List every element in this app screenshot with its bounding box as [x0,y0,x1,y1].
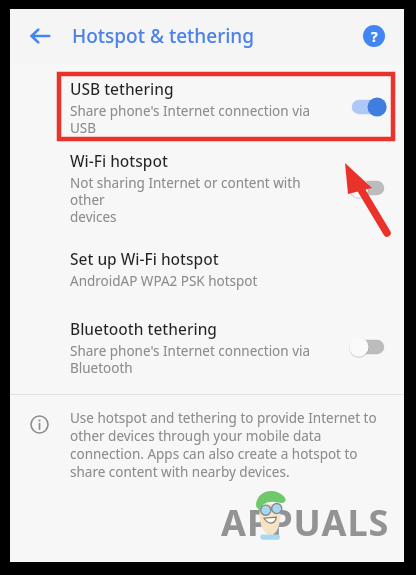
staticText: Share phone's Internet connection via Bl… [70,342,311,377]
staticText: Use hotspot and tethering to provide Int… [70,409,388,481]
staticText: AndroidAP WPA2 PSK hotspot [70,272,258,290]
staticText: Set up Wi-Fi hotspot [70,248,219,269]
button[interactable]: USB tethering [10,69,404,145]
button[interactable]: Help [354,16,394,56]
staticText: Bluetooth tethering [70,318,217,339]
staticText: APPUALS [221,498,390,547]
staticText: Wi-Fi hotspot [70,150,168,171]
button[interactable]: Toggle off [346,332,390,362]
staticText: Hotspot & tethering [72,23,255,49]
staticText: Share phone's Internet connection via US… [70,102,311,137]
button[interactable]: Wi-Fi hotspot [10,145,404,231]
button[interactable]: Back [18,14,62,58]
staticText: ? [371,27,378,46]
button[interactable]: Bluetooth tethering [10,307,404,387]
button[interactable]: Toggle off [346,173,390,203]
button[interactable]: Set up Wi-Fi hotspot [10,231,404,307]
staticText: USB tethering [70,78,174,99]
button[interactable]: Toggle on [346,92,390,122]
staticText: Not sharing Internet or content with oth… [70,174,338,226]
